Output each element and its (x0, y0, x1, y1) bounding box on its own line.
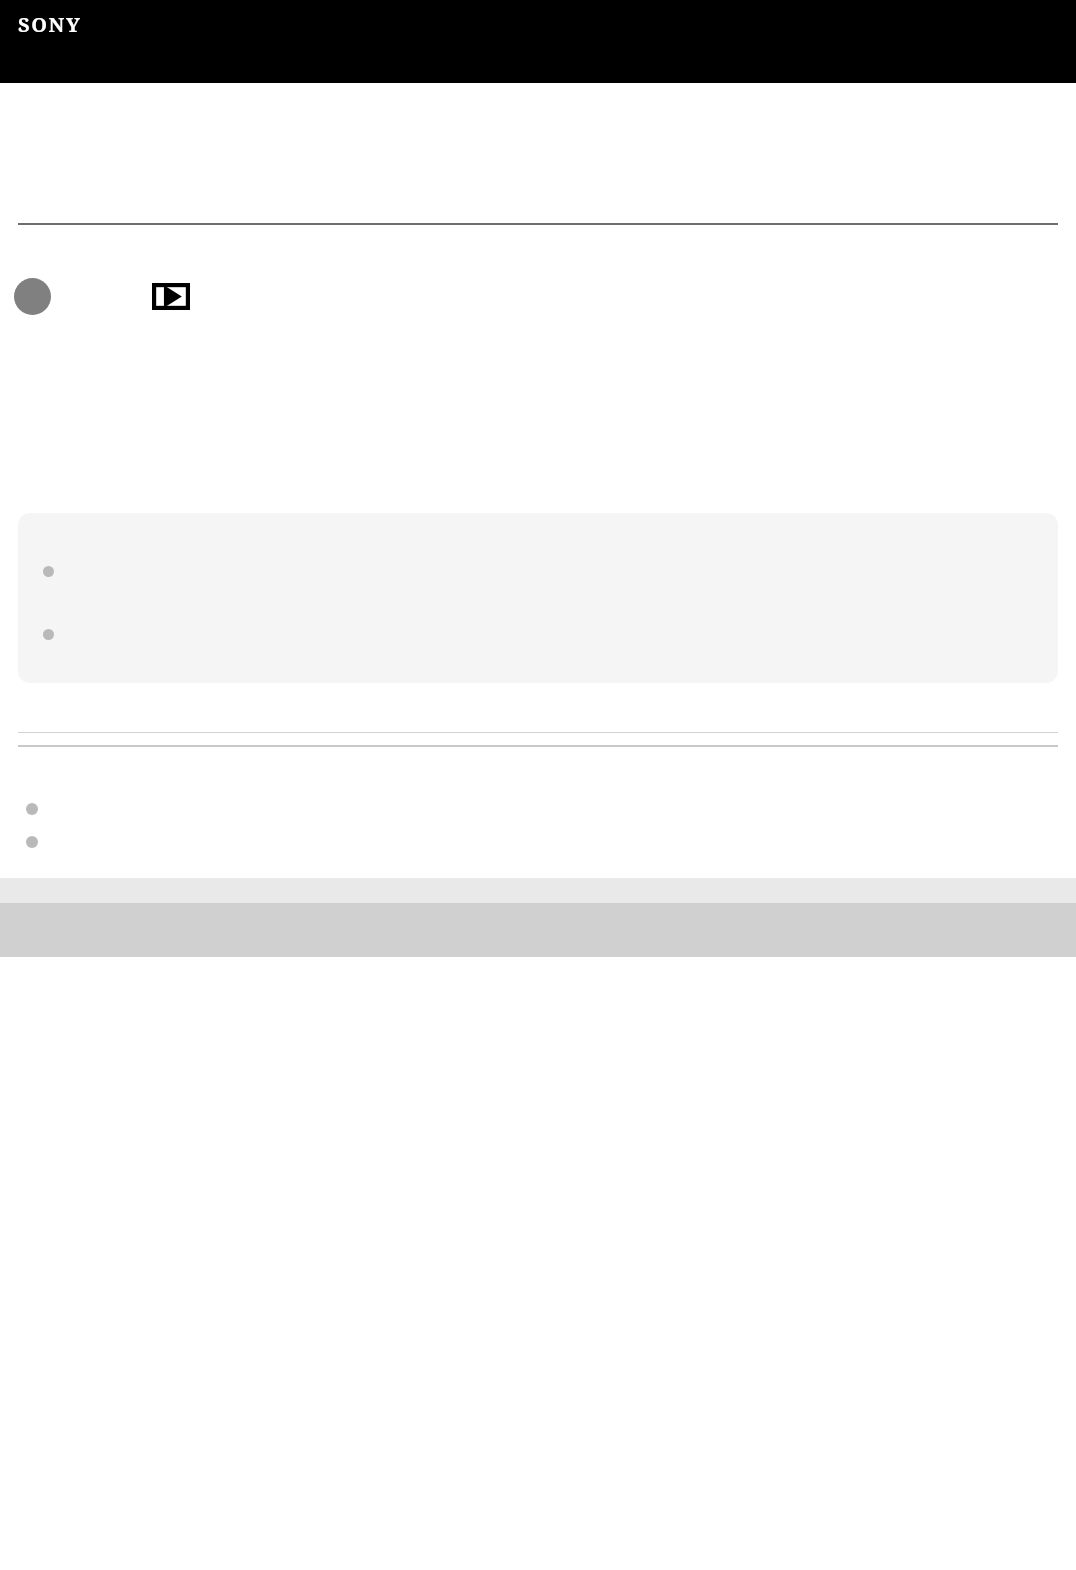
button[interactable]: List item 1 (26, 803, 38, 815)
button[interactable]: Play video (152, 283, 190, 310)
button[interactable]: SONY home (18, 11, 82, 38)
button[interactable]: List item 2 (26, 836, 38, 848)
button[interactable]: Step 1 (14, 278, 51, 315)
staticText: SONY (18, 11, 82, 38)
